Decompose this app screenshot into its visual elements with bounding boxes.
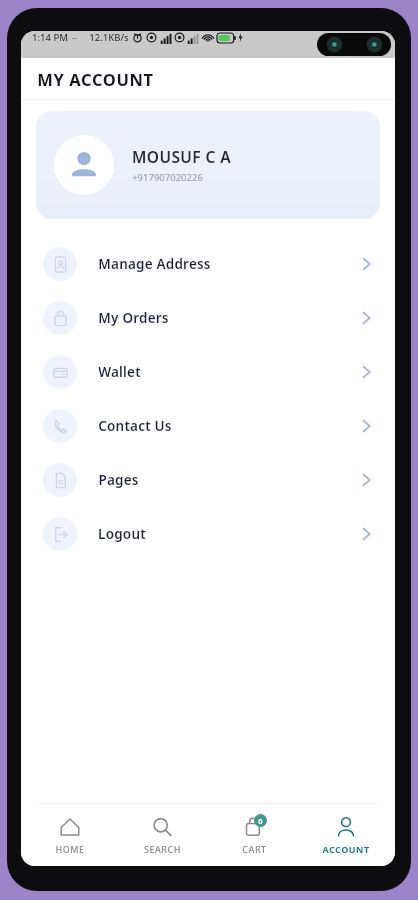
staticText: 12.1KB/s [89, 31, 129, 44]
button[interactable]: Wallet [21, 345, 395, 399]
button[interactable]: SEARCH [119, 814, 205, 855]
button[interactable]: Contact Us [21, 399, 395, 453]
staticText: Manage Address [98, 255, 211, 273]
staticText: Logout [98, 525, 146, 543]
staticText: Contact Us [98, 417, 172, 435]
staticText: Pages [98, 471, 139, 489]
staticText: CART [242, 843, 267, 855]
button[interactable]: My Orders [21, 291, 395, 345]
staticText: MY ACCOUNT [37, 68, 154, 90]
staticText: ACCOUNT [322, 843, 370, 855]
button[interactable]: ACCOUNT [303, 814, 389, 855]
button[interactable]: Pages [21, 453, 395, 507]
staticText: ·· [72, 32, 77, 44]
staticText: My Orders [98, 309, 169, 327]
button[interactable]: Manage Address [21, 237, 395, 291]
staticText: SEARCH [144, 843, 181, 855]
button[interactable]: MOUSUF C A [36, 111, 380, 219]
staticText: HOME [55, 843, 85, 855]
button[interactable]: Logout [21, 507, 395, 561]
staticText: 1:14 PM [32, 31, 68, 44]
staticText: +917907020226 [132, 171, 203, 184]
button[interactable]: HOME [27, 814, 113, 855]
staticText: 0 [258, 816, 263, 826]
button[interactable]: CART [211, 814, 297, 855]
staticText: Wallet [98, 363, 141, 381]
staticText: MOUSUF C A [132, 146, 231, 167]
